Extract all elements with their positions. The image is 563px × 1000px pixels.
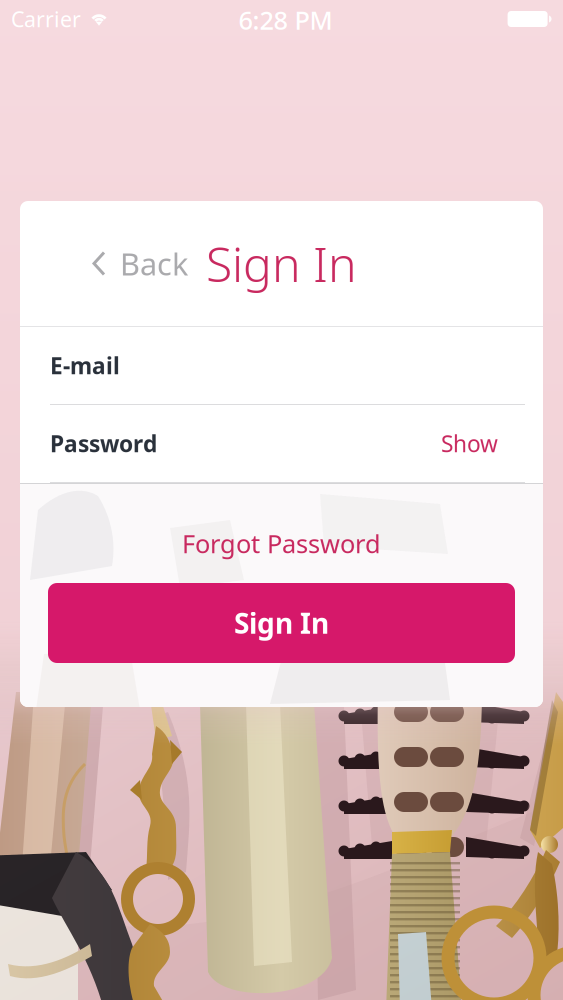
- button[interactable]: Forgot Password: [20, 484, 543, 583]
- staticText: Forgot Password: [182, 527, 381, 560]
- staticText: Sign In: [234, 604, 329, 642]
- staticText: Carrier: [11, 5, 81, 33]
- staticText: Sign In: [206, 232, 357, 295]
- staticText: Password: [50, 428, 157, 458]
- staticText: Show: [441, 428, 498, 458]
- staticText: 6:28 PM: [238, 3, 332, 37]
- button[interactable]: Back: [20, 201, 196, 326]
- staticText: Back: [120, 243, 188, 284]
- button[interactable]: Sign In: [48, 583, 515, 663]
- staticText: E-mail: [50, 350, 120, 380]
